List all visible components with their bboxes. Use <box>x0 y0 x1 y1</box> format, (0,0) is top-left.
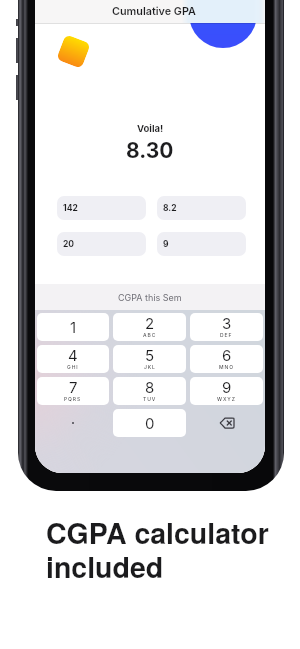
staticText: 142 <box>63 203 78 213</box>
staticText: 9 <box>163 239 169 249</box>
staticText: 7 <box>69 378 78 396</box>
button[interactable]: 142 <box>57 196 146 220</box>
staticText: CGPA calculator included <box>46 512 269 586</box>
button[interactable]: 0 <box>113 409 186 437</box>
staticText: 1 <box>70 318 77 336</box>
staticText: 8.30 <box>126 138 174 163</box>
button[interactable]: 1 <box>37 313 109 341</box>
button[interactable]: 3 <box>190 313 263 341</box>
button[interactable]: Decimal point <box>37 409 109 437</box>
button[interactable]: 5 <box>113 345 186 373</box>
button[interactable]: 8 <box>113 377 186 405</box>
staticText: 0 <box>145 414 155 432</box>
button[interactable]: 2 <box>113 313 186 341</box>
staticText: TUV <box>143 396 157 402</box>
staticText: CGPA this Sem <box>118 292 182 303</box>
staticText: JKL <box>144 364 156 370</box>
button[interactable]: 4 <box>37 345 109 373</box>
staticText: ABC <box>143 332 157 338</box>
staticText: DEF <box>220 332 233 338</box>
staticText: GHI <box>67 364 79 370</box>
button[interactable]: 20 <box>57 232 146 256</box>
button[interactable]: 9 <box>190 377 263 405</box>
staticText: Cumulative GPA <box>112 5 196 18</box>
button[interactable]: 9 <box>157 232 246 256</box>
staticText: MNO <box>219 364 234 370</box>
staticText: 4 <box>68 346 78 364</box>
button[interactable]: 7 <box>37 377 109 405</box>
staticText: 20 <box>63 239 75 249</box>
staticText: Voila! <box>137 123 164 134</box>
staticText: 3 <box>222 314 232 332</box>
staticText: 8.2 <box>163 203 177 213</box>
button[interactable]: 8.2 <box>157 196 246 220</box>
staticText: 6 <box>222 346 232 364</box>
button[interactable]: 6 <box>190 345 263 373</box>
staticText: 8 <box>145 378 155 396</box>
staticText: PQRS <box>64 396 82 402</box>
staticText: WXYZ <box>217 396 236 402</box>
staticText: 2 <box>145 314 155 332</box>
staticText: 5 <box>145 346 155 364</box>
staticText: 9 <box>222 378 232 396</box>
button[interactable]: Backspace <box>190 409 263 437</box>
